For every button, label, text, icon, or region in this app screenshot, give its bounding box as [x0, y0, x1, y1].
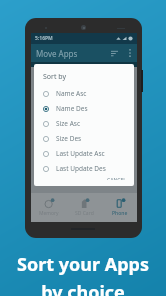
button[interactable]: Last Update Asc	[34, 146, 134, 161]
button[interactable]: Sort	[107, 46, 121, 60]
button[interactable]: SD Card	[67, 193, 102, 222]
button[interactable]: Name Des	[34, 101, 134, 116]
button[interactable]: Phone	[102, 193, 137, 222]
staticText: Size Des	[56, 134, 82, 143]
staticText: Name Asc	[56, 89, 87, 98]
button[interactable]: More options	[123, 46, 137, 60]
staticText: by choice	[41, 280, 125, 296]
staticText: Sort by	[43, 72, 67, 82]
button[interactable]: Last Update Des	[34, 161, 134, 176]
button[interactable]: Name Asc	[34, 86, 134, 101]
staticText: Last Update Asc	[56, 149, 105, 158]
staticText: Move Apps	[36, 48, 78, 59]
staticText: Size Asc	[56, 119, 81, 128]
staticText: Sort your Apps	[17, 252, 149, 277]
staticText: 5:16PM	[35, 35, 53, 42]
staticText: Memory	[39, 210, 59, 217]
button[interactable]: Memory	[31, 193, 67, 222]
button[interactable]: Size Asc	[34, 116, 134, 131]
staticText: Last Update Des	[56, 164, 106, 173]
staticText: SD Card	[75, 210, 94, 217]
button[interactable]: Size Des	[34, 131, 134, 146]
button[interactable]: CANCEL	[105, 176, 128, 181]
staticText: CANCEL	[107, 177, 126, 180]
staticText: Name Des	[56, 104, 88, 113]
staticText: Phone	[112, 210, 128, 217]
